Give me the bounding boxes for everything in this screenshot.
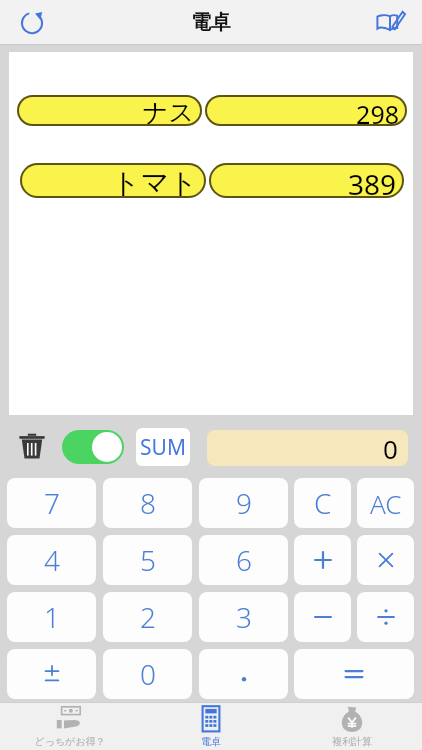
staticText: 複利計算 bbox=[332, 735, 372, 748]
staticText: 3 bbox=[236, 598, 252, 636]
button[interactable] bbox=[357, 592, 414, 642]
button[interactable]: 2 bbox=[103, 592, 192, 642]
button[interactable] bbox=[294, 535, 351, 585]
button[interactable]: どっちがお得？ bbox=[0, 702, 140, 750]
staticText: どっちがお得？ bbox=[34, 735, 106, 748]
button[interactable]: C bbox=[294, 478, 351, 528]
staticText: 298 bbox=[356, 97, 399, 124]
button[interactable]: Toggle sum mode bbox=[62, 430, 124, 464]
button[interactable] bbox=[294, 649, 414, 699]
button[interactable]: ナス bbox=[17, 95, 407, 126]
staticText: 1 bbox=[44, 598, 60, 636]
button[interactable]: 0 bbox=[207, 430, 408, 466]
button[interactable]: 6 bbox=[199, 535, 288, 585]
button[interactable]: 0 bbox=[103, 649, 192, 699]
staticText: 389 bbox=[347, 165, 396, 196]
button[interactable] bbox=[7, 649, 96, 699]
button[interactable]: 8 bbox=[103, 478, 192, 528]
staticText: ナス bbox=[142, 97, 194, 124]
staticText: 7 bbox=[44, 484, 60, 522]
button[interactable]: 4 bbox=[7, 535, 96, 585]
staticText: SUM bbox=[140, 433, 186, 462]
button[interactable]: Redo bbox=[8, 0, 56, 44]
button[interactable] bbox=[357, 535, 414, 585]
staticText: 2 bbox=[140, 598, 156, 636]
button[interactable]: 7 bbox=[7, 478, 96, 528]
button[interactable]: AC bbox=[357, 478, 414, 528]
button[interactable]: 9 bbox=[199, 478, 288, 528]
staticText: トマト bbox=[112, 165, 198, 196]
button[interactable]: 複利計算 bbox=[281, 702, 422, 750]
staticText: 6 bbox=[236, 541, 252, 579]
button[interactable]: 1 bbox=[7, 592, 96, 642]
button[interactable]: Edit notebook bbox=[366, 0, 414, 44]
staticText: 電卓 bbox=[191, 10, 231, 35]
staticText: 5 bbox=[140, 541, 156, 579]
staticText: C bbox=[314, 484, 332, 522]
staticText: 電卓 bbox=[201, 735, 221, 748]
button[interactable]: 3 bbox=[199, 592, 288, 642]
staticText: 9 bbox=[236, 484, 252, 522]
staticText: 0 bbox=[140, 655, 156, 693]
button[interactable]: 電卓 bbox=[140, 702, 281, 750]
staticText: AC bbox=[370, 486, 402, 521]
button[interactable]: 5 bbox=[103, 535, 192, 585]
staticText: 8 bbox=[140, 484, 156, 522]
button[interactable] bbox=[199, 649, 288, 699]
button[interactable]: トマト bbox=[20, 163, 404, 198]
staticText: 0 bbox=[383, 431, 398, 466]
staticText: 4 bbox=[44, 541, 60, 579]
button[interactable]: Delete bbox=[10, 424, 54, 468]
button[interactable]: SUM bbox=[136, 428, 190, 466]
button[interactable] bbox=[294, 592, 351, 642]
